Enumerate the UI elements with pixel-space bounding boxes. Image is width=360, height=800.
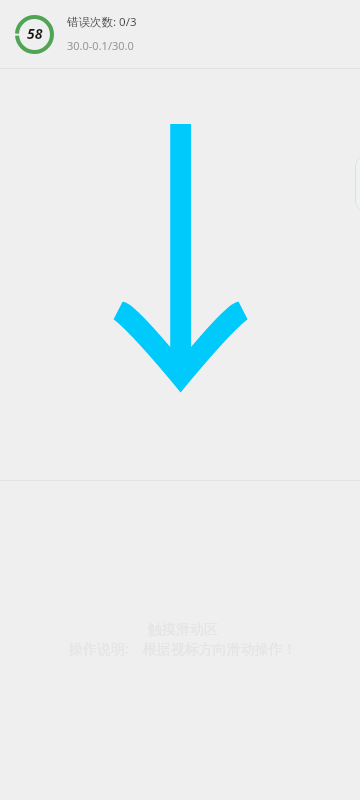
button[interactable]: Panel — [355, 155, 360, 212]
staticText: 操作说明: 根据视标方向滑动操作！ — [69, 639, 297, 658]
button[interactable]: Progress 58 — [15, 15, 54, 54]
staticText: 30.0-0.1/30.0 — [67, 38, 134, 53]
staticText: 触摸滑动区 — [148, 621, 218, 639]
staticText: 58 — [27, 24, 43, 43]
staticText: 错误次数: 0/3 — [67, 14, 137, 30]
